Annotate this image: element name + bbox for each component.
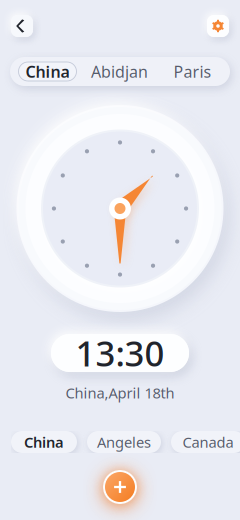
- staticText: Canada: [182, 432, 233, 452]
- staticText: Abidjan: [91, 61, 148, 82]
- staticText: China,April 18th: [65, 383, 174, 402]
- button[interactable]: Back: [11, 15, 33, 37]
- button[interactable]: Settings: [207, 15, 229, 37]
- staticText: China: [25, 61, 69, 82]
- button[interactable]: Abidjan: [76, 62, 162, 81]
- button[interactable]: China: [18, 62, 76, 81]
- staticText: China: [24, 432, 64, 452]
- staticText: Angeles: [97, 432, 151, 452]
- staticText: Paris: [173, 61, 211, 82]
- button[interactable]: China: [11, 431, 77, 453]
- button[interactable]: Angeles: [87, 431, 161, 453]
- button[interactable]: Canada: [171, 431, 240, 453]
- button[interactable]: Paris: [162, 62, 222, 81]
- button[interactable]: Add city: [103, 470, 137, 504]
- staticText: 13:30: [75, 330, 164, 376]
